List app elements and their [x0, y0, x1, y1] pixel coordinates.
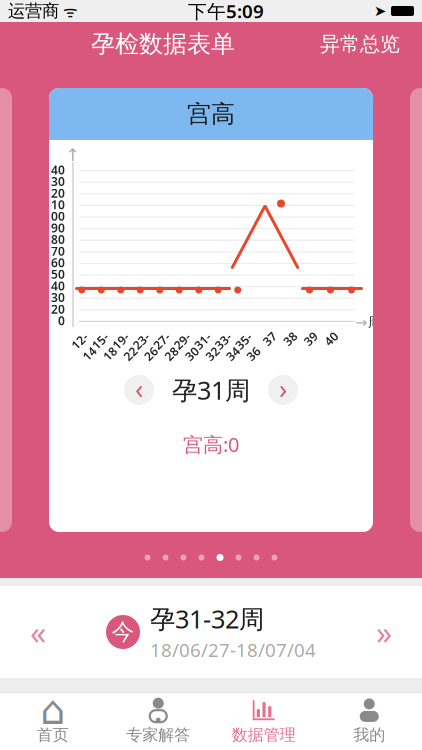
- button[interactable]: 异常总览: [312, 26, 408, 62]
- button[interactable]: ⌂: [0, 697, 105, 745]
- staticText: 数据管理: [232, 725, 296, 745]
- staticText: 12-14: [76, 331, 94, 362]
- staticText: 90: [51, 220, 65, 236]
- staticText: 35-36: [240, 331, 258, 362]
- staticText: 19-22: [117, 331, 135, 362]
- staticText: 40: [51, 278, 65, 294]
- staticText: »: [376, 611, 392, 653]
- staticText: 孕31周: [172, 373, 250, 407]
- button[interactable]: 专家解答: [105, 697, 211, 745]
- staticText: 孕检数据表单: [91, 29, 235, 59]
- staticText: 60: [51, 255, 65, 270]
- staticText: 异常总览: [320, 32, 400, 56]
- staticText: 专家解答: [126, 725, 190, 745]
- staticText: 38: [283, 331, 297, 346]
- staticText: 50: [51, 266, 65, 282]
- staticText: 39: [304, 331, 318, 346]
- button[interactable]: 我的: [316, 697, 422, 745]
- staticText: 40: [324, 331, 338, 346]
- button[interactable]: 下一周: [268, 371, 298, 409]
- staticText: «: [30, 611, 46, 653]
- staticText: 100: [44, 208, 65, 224]
- staticText: 80: [51, 231, 65, 247]
- staticText: 27-28: [158, 331, 176, 362]
- staticText: 110: [44, 197, 65, 212]
- staticText: 今: [111, 618, 134, 646]
- staticText: ᯤ: [59, 0, 78, 22]
- staticText: 30: [51, 289, 65, 305]
- staticText: 下午5:09: [188, 0, 264, 23]
- staticText: 周: [368, 314, 381, 330]
- staticText: 宫高: [187, 99, 235, 129]
- staticText: ↑: [65, 145, 80, 165]
- staticText: 130: [44, 173, 65, 189]
- staticText: 15-18: [97, 331, 115, 362]
- staticText: ➤: [374, 3, 386, 19]
- staticText: ‹: [135, 371, 143, 406]
- button[interactable]: 上一周: [124, 371, 154, 409]
- staticText: 我的: [353, 725, 385, 745]
- staticText: 29-30: [179, 331, 197, 362]
- staticText: ⌂: [40, 687, 65, 733]
- staticText: 31-32: [199, 331, 217, 362]
- staticText: 120: [44, 185, 65, 201]
- staticText: 23-26: [138, 331, 156, 362]
- staticText: →: [355, 314, 367, 331]
- staticText: 0: [58, 313, 65, 328]
- staticText: 140: [44, 162, 65, 178]
- staticText: ›: [279, 371, 287, 406]
- staticText: 33-34: [220, 331, 238, 362]
- staticText: 37: [263, 331, 277, 346]
- button[interactable]: 下一个孕周: [354, 602, 414, 662]
- button[interactable]: 上一个孕周: [8, 602, 68, 662]
- staticText: 20: [51, 301, 65, 317]
- staticText: 运营商: [8, 0, 59, 22]
- button[interactable]: 数据管理: [211, 697, 316, 745]
- staticText: 18/06/27-18/07/04: [150, 637, 316, 662]
- staticText: 70: [51, 243, 65, 259]
- staticText: 宫高:0: [183, 431, 239, 458]
- staticText: 首页: [37, 725, 69, 745]
- staticText: 孕31-32周: [150, 602, 264, 635]
